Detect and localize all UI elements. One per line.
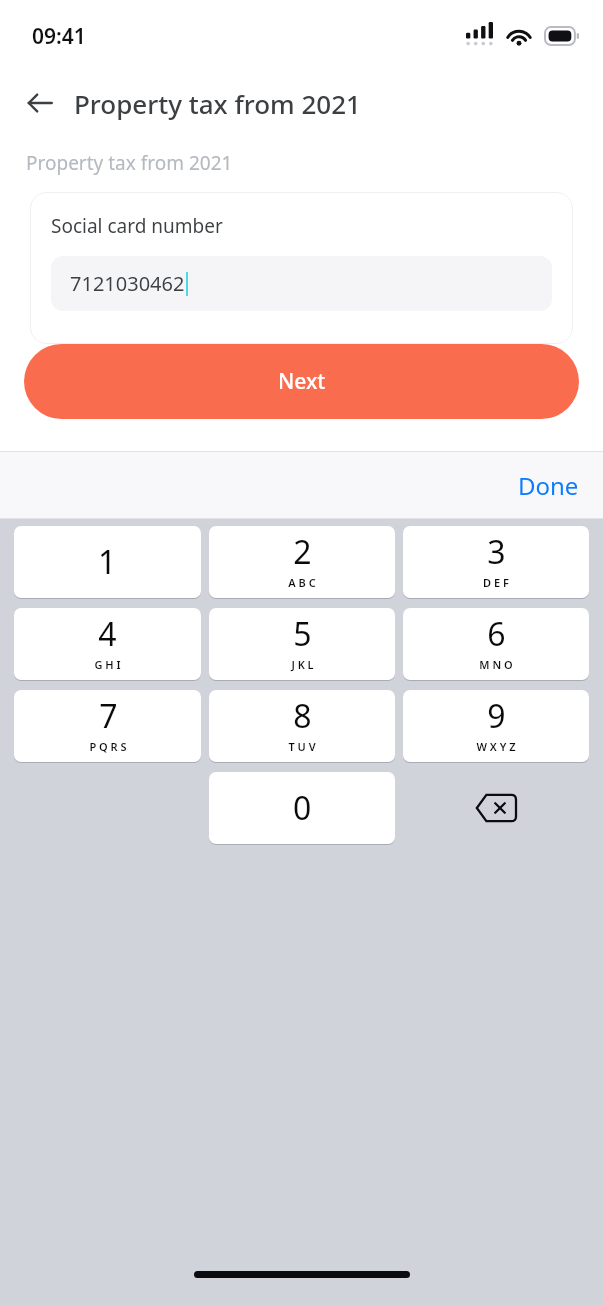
button[interactable]: 1 [14, 526, 201, 598]
staticText: 4 [98, 612, 117, 656]
button[interactable]: Social card number [30, 192, 573, 344]
staticText: 3 [487, 530, 506, 574]
staticText: Property tax from 2021 [26, 150, 233, 176]
button[interactable]: Next [24, 344, 579, 419]
staticText: J K L [291, 657, 314, 672]
staticText: M N O [479, 657, 513, 672]
button[interactable]: Delete [403, 772, 589, 844]
staticText: 5 [293, 612, 312, 656]
staticText: Done [518, 469, 579, 502]
staticText: Social card number [51, 213, 223, 239]
staticText: P Q R S [89, 739, 127, 754]
staticText: G H I [94, 657, 121, 672]
staticText: T U V [288, 739, 316, 754]
button[interactable]: 0 [209, 772, 395, 844]
staticText: 2 [293, 530, 312, 574]
button[interactable]: Done [518, 469, 579, 502]
staticText: 09:41 [32, 22, 86, 51]
staticText: 8 [293, 694, 312, 738]
staticText: Next [278, 367, 326, 396]
staticText: 1 [98, 540, 117, 584]
staticText: 0 [293, 786, 312, 830]
staticText: D E F [483, 575, 509, 590]
button[interactable]: 8 [209, 690, 395, 762]
staticText: 9 [487, 694, 506, 738]
button[interactable]: 5 [209, 608, 395, 680]
button[interactable]: 4 [14, 608, 201, 680]
staticText: W X Y Z [476, 739, 516, 754]
button[interactable]: 9 [403, 690, 589, 762]
button[interactable]: 7 [14, 690, 201, 762]
button[interactable]: 3 [403, 526, 589, 598]
staticText: 7121030462 [70, 270, 185, 297]
button[interactable]: 2 [209, 526, 395, 598]
staticText: 7 [99, 694, 118, 738]
staticText: 6 [487, 612, 506, 656]
staticText: Property tax from 2021 [74, 86, 361, 121]
staticText: A B C [288, 575, 316, 590]
button[interactable]: 6 [403, 608, 589, 680]
button[interactable]: Back [16, 79, 64, 127]
